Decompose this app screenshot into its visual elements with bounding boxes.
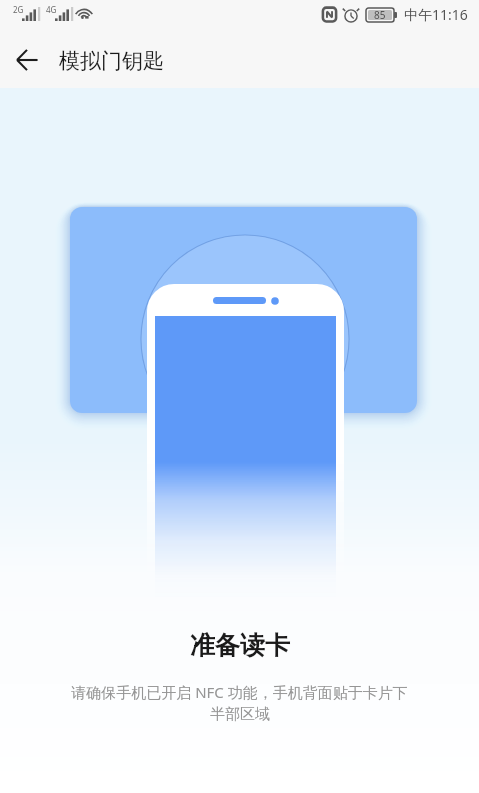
staticText: 准备读卡 bbox=[190, 630, 290, 661]
staticText: 2G bbox=[13, 4, 24, 15]
button[interactable]: Back bbox=[4, 37, 50, 83]
staticText: 半部区域 bbox=[210, 705, 270, 724]
staticText: 请确保手机已开启 NFC 功能，手机背面贴于卡片下 bbox=[71, 682, 408, 702]
staticText: 4G bbox=[46, 4, 57, 15]
staticText: 中午11:16 bbox=[404, 5, 468, 24]
staticText: 模拟门钥匙 bbox=[59, 48, 164, 74]
staticText: 85 bbox=[374, 8, 386, 22]
